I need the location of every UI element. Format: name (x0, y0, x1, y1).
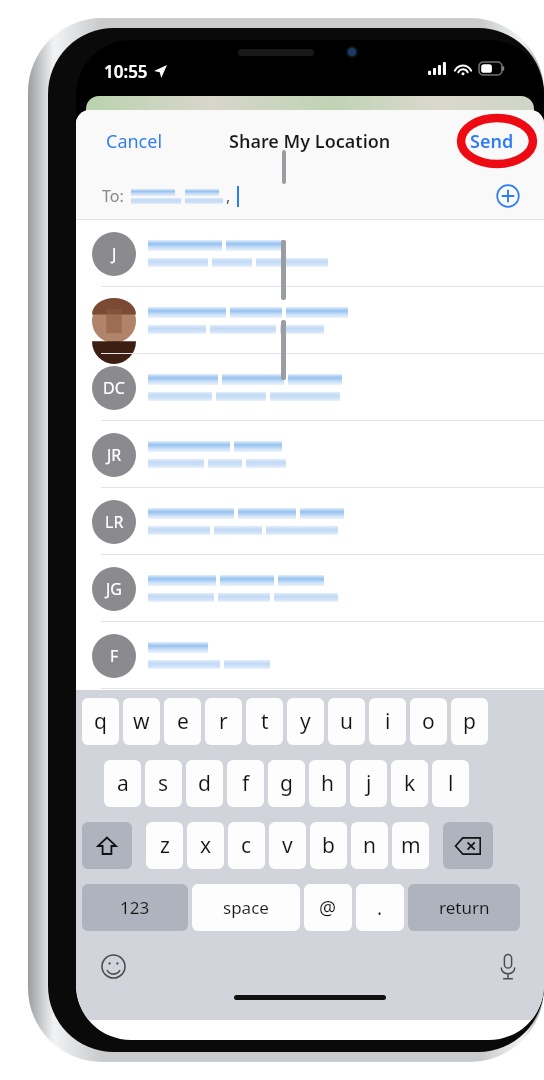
staticText: n (363, 831, 376, 860)
button[interactable]: DC (76, 354, 544, 421)
staticText: v (282, 831, 293, 860)
staticText: J (112, 243, 117, 265)
staticText: s (158, 769, 169, 798)
staticText: l (448, 769, 454, 798)
button[interactable]: m (392, 822, 429, 869)
staticText: g (280, 769, 293, 798)
button[interactable]: Shift (82, 822, 132, 869)
staticText: To: (102, 185, 124, 207)
staticText: e (177, 707, 189, 736)
staticText: Share My Location (229, 129, 391, 154)
staticText: z (160, 831, 170, 860)
button[interactable]: b (310, 822, 347, 869)
staticText: JR (107, 444, 122, 466)
staticText: 123 (120, 896, 150, 919)
button[interactable]: s (145, 760, 182, 807)
button[interactable]: l (432, 760, 469, 807)
button[interactable]: c (228, 822, 265, 869)
staticText: @ (319, 895, 337, 921)
button[interactable]: g (268, 760, 305, 807)
staticText: f (242, 769, 250, 798)
staticText: a (117, 769, 129, 798)
button[interactable]: w (123, 698, 160, 745)
button[interactable]: y (287, 698, 324, 745)
staticText: d (198, 769, 211, 798)
button[interactable]: Emoji (98, 951, 129, 982)
button[interactable]: Send (466, 123, 518, 160)
button[interactable]: r (205, 698, 242, 745)
staticText: t (261, 707, 269, 736)
button[interactable]: . (356, 884, 404, 931)
staticText: c (241, 831, 252, 860)
staticText: DC (103, 377, 125, 399)
button[interactable]: Add contact (492, 180, 524, 212)
staticText: , (226, 185, 231, 207)
staticText: h (321, 769, 334, 798)
button[interactable]: @ (304, 884, 352, 931)
staticText: i (385, 707, 391, 736)
staticText: b (322, 831, 335, 860)
button[interactable]: Dictate (496, 951, 520, 983)
button[interactable]: z (146, 822, 183, 869)
staticText: y (300, 707, 311, 736)
button[interactable]: k (391, 760, 428, 807)
button[interactable]: F (76, 622, 544, 689)
staticText: u (340, 707, 353, 736)
staticText: Send (470, 129, 514, 154)
staticText: x (200, 831, 212, 860)
button[interactable]: 123 (82, 884, 188, 931)
button[interactable]: e (164, 698, 201, 745)
button[interactable]: a (104, 760, 141, 807)
button[interactable]: u (328, 698, 365, 745)
button[interactable]: return (408, 884, 520, 931)
button[interactable]: f (227, 760, 264, 807)
staticText: q (94, 707, 107, 736)
staticText: LR (105, 511, 124, 533)
button[interactable]: Backspace (443, 822, 493, 869)
staticText: return (439, 896, 490, 919)
button[interactable]: t (246, 698, 283, 745)
button[interactable]: LR (76, 488, 544, 555)
staticText: r (219, 707, 228, 736)
button[interactable]: h (309, 760, 346, 807)
button[interactable]: j (350, 760, 387, 807)
button[interactable]: JR (76, 421, 544, 488)
button[interactable]: JG (76, 555, 544, 622)
button[interactable]: J (76, 220, 544, 287)
staticText: Cancel (106, 129, 163, 154)
staticText: F (110, 645, 119, 667)
button[interactable]: o (410, 698, 447, 745)
staticText: o (422, 707, 435, 736)
staticText: p (463, 707, 476, 736)
staticText: JG (106, 578, 123, 600)
staticText: w (133, 707, 150, 736)
button[interactable]: x (187, 822, 224, 869)
staticText: m (401, 831, 421, 860)
button[interactable] (76, 287, 544, 354)
staticText: . (377, 895, 383, 921)
staticText: space (223, 896, 269, 919)
button[interactable]: d (186, 760, 223, 807)
staticText: 10:55 (104, 60, 148, 83)
button[interactable]: v (269, 822, 306, 869)
button[interactable]: p (451, 698, 488, 745)
staticText: j (366, 769, 372, 798)
button[interactable]: i (369, 698, 406, 745)
staticText: k (404, 769, 416, 798)
button[interactable]: space (192, 884, 300, 931)
button[interactable]: Cancel (102, 123, 167, 160)
button[interactable]: n (351, 822, 388, 869)
button[interactable]: q (82, 698, 119, 745)
